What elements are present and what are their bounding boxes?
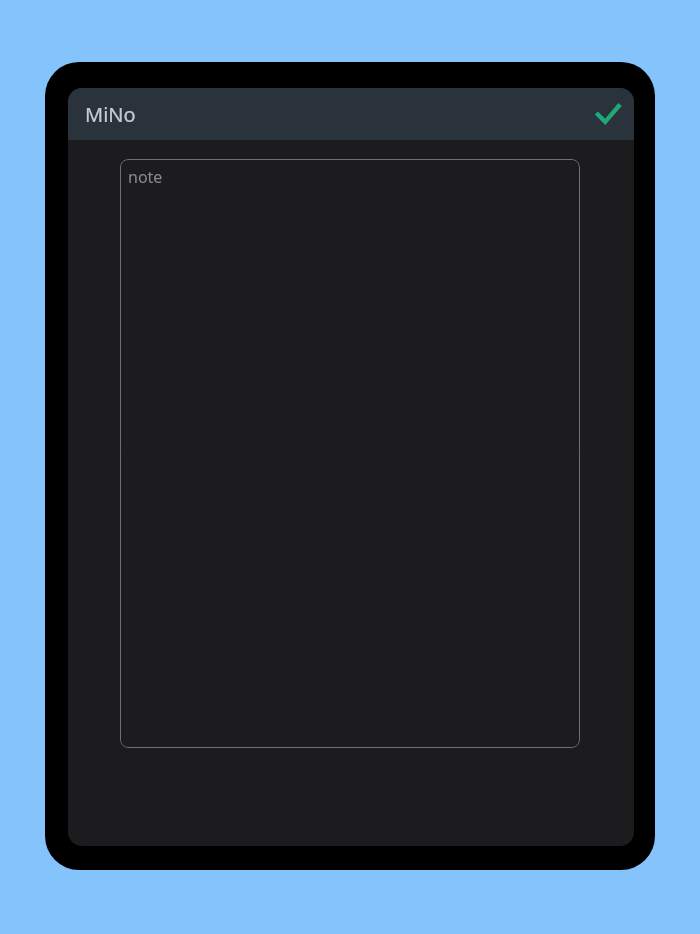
staticText: note [128, 166, 163, 188]
button[interactable]: note [120, 159, 580, 748]
button[interactable]: Save note [582, 88, 634, 140]
staticText: MiNo [85, 101, 136, 128]
